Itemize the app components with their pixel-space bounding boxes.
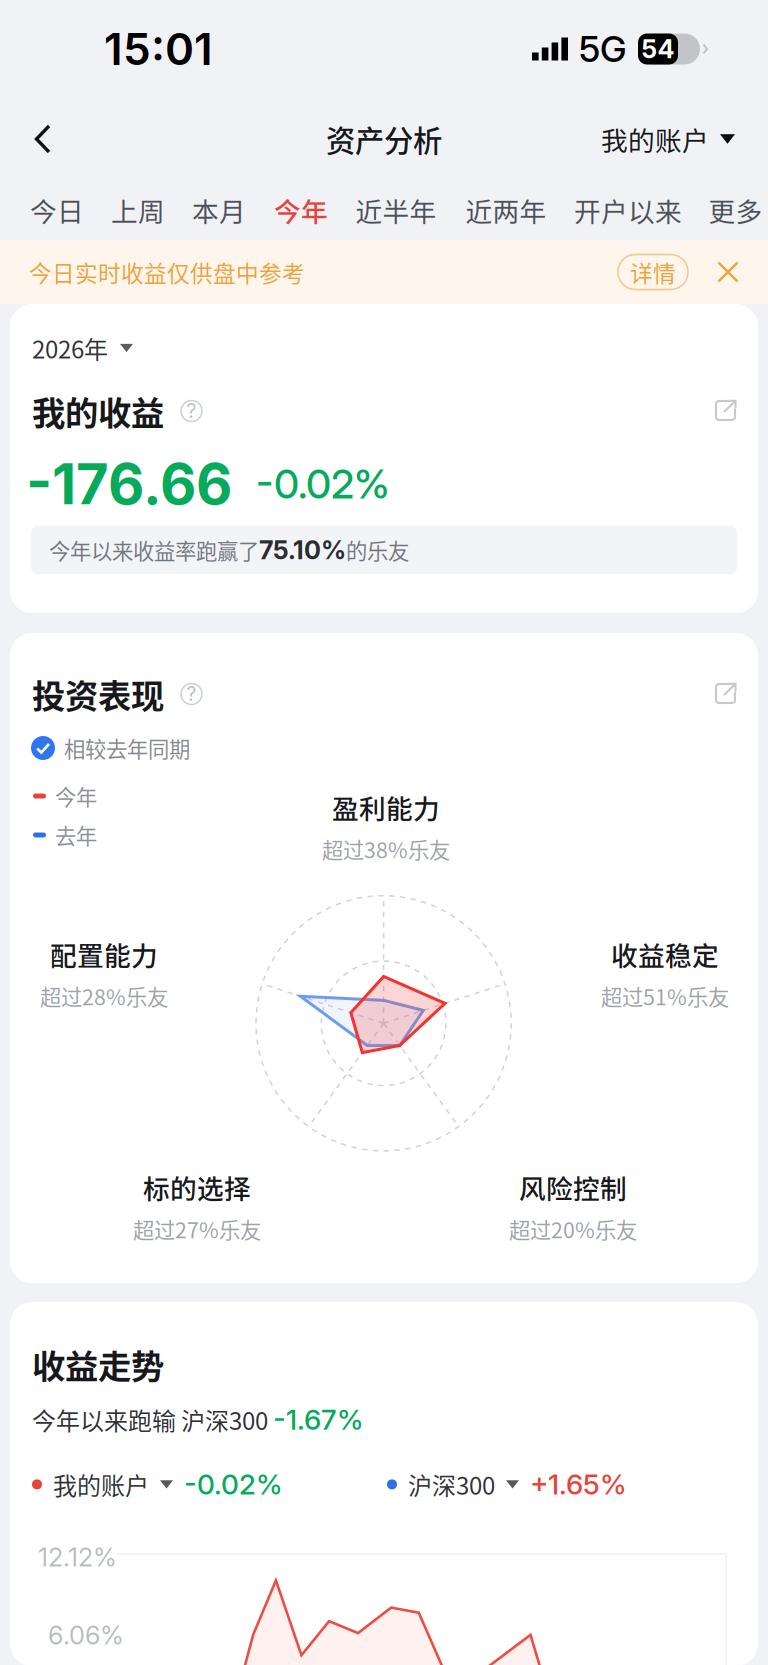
staticText: 15:01 xyxy=(104,22,213,76)
button[interactable]: Open detail xyxy=(714,399,738,423)
staticText: 盈利能力 xyxy=(332,788,440,826)
button[interactable]: 更多 xyxy=(709,180,762,240)
staticText: 沪深300 xyxy=(408,1467,495,1502)
button[interactable]: 今年 xyxy=(275,180,327,240)
staticText: -0.02% xyxy=(184,1467,283,1501)
staticText: 54 xyxy=(641,34,674,64)
staticText: 今年 xyxy=(274,191,328,229)
staticText: -1.67% xyxy=(273,1403,364,1437)
staticText: 开户以来 xyxy=(574,191,682,229)
staticText: 近两年 xyxy=(465,191,546,229)
button[interactable]: 开户以来 xyxy=(575,180,681,240)
staticText: 的乐友 xyxy=(346,535,409,565)
staticText: 本月 xyxy=(192,191,246,229)
staticText: 详情 xyxy=(630,256,676,288)
staticText: 更多 xyxy=(708,191,762,229)
staticText: 今年 xyxy=(55,781,97,811)
staticText: 今日实时收益仅供盘中参考 xyxy=(29,256,305,288)
button[interactable]: 2026年 xyxy=(32,331,133,365)
staticText: 收益走势 xyxy=(32,1340,164,1388)
staticText: 我的账户 xyxy=(601,120,709,158)
staticText: 我的收益 xyxy=(32,387,164,435)
staticText: ? xyxy=(186,399,196,422)
staticText: 近半年 xyxy=(355,191,436,229)
staticText: 标的选择 xyxy=(143,1168,251,1206)
staticText: 上周 xyxy=(111,191,165,229)
button[interactable]: 我的账户 xyxy=(601,98,768,180)
staticText: 超过51%乐友 xyxy=(601,981,729,1011)
button[interactable]: 今日 xyxy=(32,180,82,240)
staticText: 收益稳定 xyxy=(611,935,719,973)
staticText: 投资表现 xyxy=(32,670,164,718)
staticText: 去年 xyxy=(55,820,97,850)
staticText: 75.10% xyxy=(259,535,346,565)
staticText: 今年以来跑输 沪深300 xyxy=(32,1402,273,1437)
staticText: 超过20%乐友 xyxy=(509,1214,637,1244)
button[interactable]: 本月 xyxy=(194,180,244,240)
staticText: 相较去年同期 xyxy=(64,733,190,763)
button[interactable]: 我的账户 xyxy=(32,1467,283,1502)
staticText: 超过28%乐友 xyxy=(40,981,168,1011)
button[interactable]: 沪深300 xyxy=(387,1467,627,1502)
button[interactable]: 近两年 xyxy=(466,180,546,240)
staticText: ? xyxy=(186,682,196,705)
button[interactable]: 详情 xyxy=(618,254,688,289)
staticText: -176.66 xyxy=(26,450,232,518)
staticText: 今日 xyxy=(30,191,84,229)
staticText: 5G xyxy=(579,27,627,71)
staticText: 资产分析 xyxy=(326,118,442,160)
button[interactable]: 上周 xyxy=(113,180,163,240)
button[interactable]: 相较去年同期 xyxy=(31,733,190,763)
staticText: 风险控制 xyxy=(519,1168,627,1206)
staticText: 配置能力 xyxy=(50,935,158,973)
staticText: 2026年 xyxy=(32,331,108,365)
button[interactable]: 近半年 xyxy=(356,180,436,240)
staticText: 今年以来收益率跑赢了 xyxy=(49,535,259,565)
staticText: 6.06% xyxy=(48,1620,124,1651)
staticText: +1.65% xyxy=(530,1467,627,1501)
button[interactable]: Close xyxy=(704,241,752,303)
staticText: -0.02% xyxy=(256,460,390,508)
button[interactable]: Open performance xyxy=(714,682,738,706)
staticText: 超过38%乐友 xyxy=(322,834,450,864)
staticText: 我的账户 xyxy=(53,1467,149,1502)
button[interactable]: Back xyxy=(0,98,86,180)
staticText: 超过27%乐友 xyxy=(133,1214,261,1244)
staticText: 12.12% xyxy=(38,1542,117,1573)
